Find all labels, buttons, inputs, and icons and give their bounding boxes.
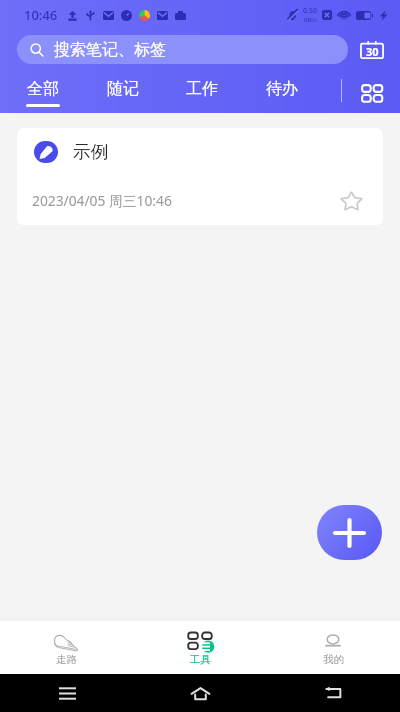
button[interactable]: Home [134, 674, 267, 712]
staticText: 搜索笔记、标签 [54, 40, 166, 60]
button[interactable]: Calendar [357, 35, 387, 63]
staticText: 工具 [190, 653, 211, 666]
button[interactable]: 工作 [162, 68, 242, 113]
button[interactable]: 待办 [242, 68, 322, 113]
staticText: 全部 [27, 79, 59, 99]
button[interactable]: Add note [317, 505, 382, 560]
staticText: 工作 [186, 79, 218, 99]
staticText: 30 [366, 44, 379, 59]
button[interactable]: 走路 [26, 621, 106, 674]
button[interactable]: 搜索笔记、标签 [17, 35, 348, 64]
staticText: 10:46 [24, 6, 58, 24]
staticText: 待办 [266, 79, 298, 99]
button[interactable]: Favorite [335, 185, 367, 217]
button[interactable]: 全部 [3, 68, 83, 113]
staticText: 随记 [107, 79, 139, 99]
button[interactable]: 随记 [83, 68, 163, 113]
staticText: 示例 [73, 141, 109, 163]
staticText: 走路 [56, 653, 77, 666]
button[interactable]: Back [267, 674, 400, 712]
button[interactable]: Grid view [353, 70, 389, 115]
button[interactable]: 工具 [160, 621, 240, 674]
staticText: 2023/04/05 周三10:46 [32, 191, 172, 210]
staticText: KB/s [304, 16, 317, 24]
button[interactable]: 我的 [293, 621, 373, 674]
button[interactable]: Recent apps [0, 674, 134, 712]
button[interactable]: 示例 [17, 128, 383, 225]
staticText: 我的 [323, 653, 344, 666]
staticText: 0.50 [303, 6, 317, 16]
